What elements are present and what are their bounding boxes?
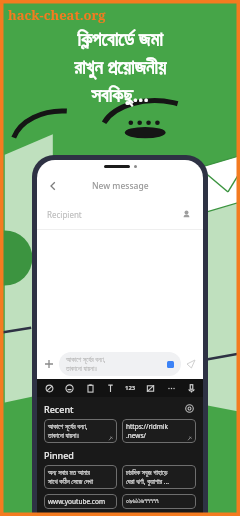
staticText: ০৯৬১১৬৭৭৭৭৭ (126, 498, 159, 505)
staticText: hack-cheat.org (8, 6, 106, 24)
button[interactable]: Send (184, 357, 198, 371)
button[interactable]: Settings (183, 402, 196, 415)
staticText: সাথে কঠিন সেজে দেখা (48, 477, 93, 486)
staticText: Recent (44, 403, 74, 415)
button[interactable]: Theme (41, 380, 57, 396)
staticText: ক্লিপবোর্ডে জমা (6, 26, 234, 52)
staticText: https://ridmik (126, 422, 168, 431)
button[interactable]: আকাশে সূর্যের বন্যা, (44, 419, 117, 443)
button[interactable]: Numbers (122, 380, 138, 396)
button[interactable]: Add contact (179, 207, 193, 221)
staticText: www.youtube.com (48, 497, 105, 506)
button[interactable]: More (163, 380, 179, 396)
button[interactable]: চারদিক সবুজ পাহাড়ে (122, 465, 196, 489)
button[interactable]: Clipboard (82, 380, 98, 396)
button[interactable]: Back (45, 178, 61, 194)
staticText: চারদিক সবুজ পাহাড়ে (126, 468, 168, 477)
staticText: রাখুন প্রয়োজনীয় (6, 54, 234, 80)
staticText: 123 (125, 384, 136, 392)
staticText: তাকানো যায়না। (66, 364, 97, 373)
staticText: .news/ (126, 431, 146, 440)
staticText: আকাশে সূর্যের বন্যা, (66, 355, 106, 364)
staticText: অন্য সবার মত আমার (48, 468, 90, 477)
button[interactable]: Attach (42, 357, 56, 371)
button[interactable]: Sticker (142, 380, 158, 396)
staticText: Recipient (47, 209, 82, 220)
button[interactable]: Voice input (183, 380, 199, 396)
button[interactable]: ০৯৬১১৬৭৭৭৭৭ (122, 494, 196, 509)
staticText: New message (92, 180, 149, 192)
staticText: Pinned (44, 449, 74, 461)
staticText: তাকানো যায়না। (48, 431, 79, 440)
button[interactable]: www.youtube.com (44, 494, 117, 509)
staticText: আকাশে সূর্যের বন্যা, (48, 422, 88, 431)
button[interactable]: Text tools (102, 380, 118, 396)
button[interactable]: https://ridmik (122, 419, 196, 443)
staticText: ঘেরা ঝর্ণা, কুয়াশার ... (126, 477, 170, 486)
button[interactable]: আকাশে সূর্যের বন্যা, (59, 352, 181, 376)
button[interactable]: Emoji (61, 380, 77, 396)
staticText: সবকিছু... (6, 82, 234, 108)
button[interactable]: অন্য সবার মত আমার (44, 465, 117, 489)
